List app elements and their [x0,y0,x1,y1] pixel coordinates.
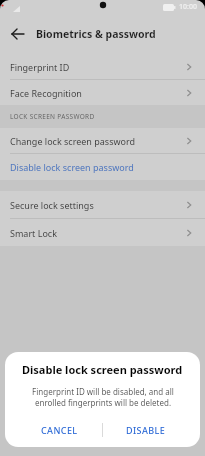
staticText: Disable lock screen password [10,161,134,173]
button[interactable] [0,14,36,54]
staticText: Fingerprint ID [10,61,70,73]
button[interactable]: DISABLE [103,416,189,444]
staticText: DISABLE [126,424,166,436]
staticText: Change lock screen password [10,135,136,147]
staticText: Biometrics & password [36,27,156,41]
button[interactable]: Fingerprint ID [0,54,205,79]
button[interactable]: Disable lock screen password [0,154,205,180]
button[interactable]: Change lock screen password [0,128,205,153]
staticText: Disable lock screen password [22,362,183,377]
staticText: Smart Lock [10,227,57,239]
staticText: Secure lock settings [10,199,94,211]
staticText: 10:00 [179,2,197,12]
staticText: Face Recognition [10,87,82,99]
staticText: CANCEL [41,424,78,436]
button[interactable]: CANCEL [16,416,102,444]
button[interactable]: Face Recognition [0,80,205,105]
staticText: Fingerprint ID will be disabled, and all… [32,386,174,408]
button[interactable]: Secure lock settings [0,191,205,218]
button[interactable]: Smart Lock [0,219,205,246]
staticText: LOCK SCREEN PASSWORD [10,112,95,121]
